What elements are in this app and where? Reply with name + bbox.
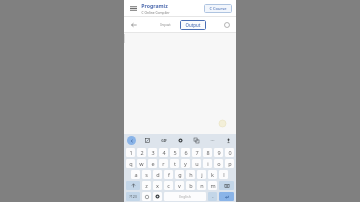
staticText: 5: [173, 149, 177, 156]
button[interactable]: Theme: [221, 19, 232, 30]
button[interactable]: .: [208, 192, 217, 201]
staticText: v: [178, 182, 181, 189]
staticText: C Online Compiler: [141, 10, 170, 14]
button[interactable]: 0: [225, 148, 234, 157]
staticText: x: [156, 182, 159, 189]
button[interactable]: 8: [203, 148, 212, 157]
staticText: ?123: [129, 194, 137, 199]
button[interactable]: w: [137, 159, 146, 168]
button[interactable]: l: [219, 170, 228, 179]
staticText: o: [217, 160, 221, 167]
button[interactable]: p: [225, 159, 234, 168]
staticText: b: [189, 182, 193, 189]
staticText: 1: [129, 149, 133, 156]
staticText: 9: [217, 149, 221, 156]
button[interactable]: o: [214, 159, 223, 168]
button[interactable]: q: [126, 159, 135, 168]
button[interactable]: 6: [181, 148, 190, 157]
button[interactable]: Settings: [153, 192, 162, 201]
staticText: 3: [151, 149, 155, 156]
staticText: Input: [160, 22, 171, 28]
button[interactable]: C Course: [204, 4, 232, 13]
button[interactable]: x: [153, 181, 162, 190]
staticText: y: [184, 160, 187, 167]
button[interactable]: Translate: [192, 136, 201, 145]
button[interactable]: Voice input: [224, 136, 233, 145]
button[interactable]: t: [170, 159, 179, 168]
button[interactable]: More options: [208, 136, 217, 145]
button[interactable]: Expand toolbar: [127, 136, 136, 145]
button[interactable]: s: [142, 170, 151, 179]
staticText: i: [207, 160, 209, 167]
staticText: h: [189, 171, 193, 178]
button[interactable]: d: [153, 170, 162, 179]
staticText: 8: [206, 149, 210, 156]
button[interactable]: a: [131, 170, 140, 179]
staticText: r: [162, 160, 165, 167]
button[interactable]: 1: [126, 148, 135, 157]
staticText: j: [201, 171, 203, 178]
button[interactable]: Enter: [219, 192, 234, 201]
button[interactable]: e: [148, 159, 157, 168]
staticText: 7: [195, 149, 199, 156]
button[interactable]: Input: [153, 20, 177, 30]
button[interactable]: Shift: [126, 181, 140, 190]
button[interactable]: j: [197, 170, 206, 179]
staticText: z: [145, 182, 148, 189]
button[interactable]: g: [175, 170, 184, 179]
button[interactable]: k: [208, 170, 217, 179]
button[interactable]: 3: [148, 148, 157, 157]
staticText: p: [228, 160, 232, 167]
button[interactable]: Output: [180, 20, 206, 30]
staticText: d: [156, 171, 160, 178]
staticText: e: [151, 160, 155, 167]
staticText: t: [174, 160, 176, 167]
staticText: 0: [228, 149, 232, 156]
button[interactable]: Menu: [128, 3, 138, 13]
button[interactable]: 2: [137, 148, 146, 157]
button[interactable]: r: [159, 159, 168, 168]
button[interactable]: v: [175, 181, 184, 190]
staticText: a: [134, 171, 138, 178]
staticText: GIF: [161, 138, 167, 143]
button[interactable]: f: [164, 170, 173, 179]
button[interactable]: n: [197, 181, 206, 190]
staticText: k: [211, 171, 214, 178]
staticText: c: [167, 182, 170, 189]
button[interactable]: z: [142, 181, 151, 190]
staticText: Programiz: [141, 2, 168, 9]
button[interactable]: Symbols: [126, 192, 140, 201]
button[interactable]: GIF: [159, 136, 168, 145]
staticText: f: [168, 171, 170, 178]
button[interactable]: b: [186, 181, 195, 190]
button[interactable]: Emoji: [142, 192, 151, 201]
staticText: 4: [162, 149, 166, 156]
staticText: 6: [184, 149, 188, 156]
button[interactable]: Clipboard: [143, 136, 152, 145]
button[interactable]: 5: [170, 148, 179, 157]
button[interactable]: 7: [192, 148, 201, 157]
button[interactable]: Space: [164, 192, 206, 201]
staticText: n: [200, 182, 204, 189]
button[interactable]: i: [203, 159, 212, 168]
button[interactable]: Settings: [176, 136, 185, 145]
button[interactable]: Backspace: [219, 181, 234, 190]
button[interactable]: 4: [159, 148, 168, 157]
staticText: q: [129, 160, 133, 167]
button[interactable]: 9: [214, 148, 223, 157]
button[interactable]: Back: [128, 19, 139, 30]
staticText: l: [223, 171, 225, 178]
staticText: C Course: [209, 6, 227, 11]
staticText: English: [179, 194, 191, 199]
staticText: s: [145, 171, 148, 178]
button[interactable]: m: [208, 181, 217, 190]
staticText: 2: [140, 149, 144, 156]
staticText: w: [139, 160, 144, 167]
staticText: g: [178, 171, 182, 178]
button[interactable]: h: [186, 170, 195, 179]
button[interactable]: y: [181, 159, 190, 168]
staticText: m: [210, 182, 216, 189]
button[interactable]: u: [192, 159, 201, 168]
button[interactable]: c: [164, 181, 173, 190]
staticText: .: [212, 193, 214, 200]
